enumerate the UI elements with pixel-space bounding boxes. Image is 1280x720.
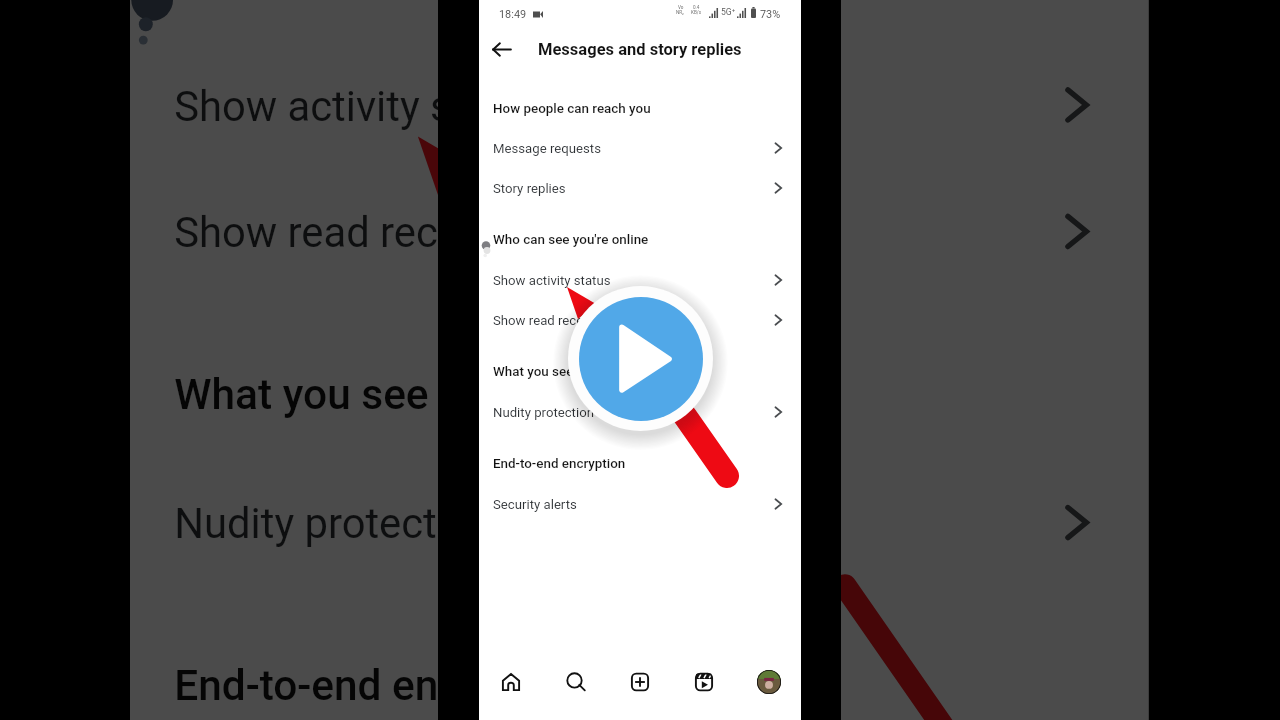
button[interactable]: Search (559, 666, 591, 698)
button[interactable]: Show read receipts (479, 300, 801, 340)
button[interactable]: Play (579, 297, 703, 421)
button[interactable]: Reels (688, 666, 720, 698)
staticText: Who can see you're online (493, 232, 649, 248)
staticText: Who can see you're online (174, 0, 668, 4)
staticText: End-to-end encryption (493, 456, 626, 472)
staticText: Show read receipts (174, 209, 529, 257)
staticText: What you see (493, 364, 574, 380)
staticText: Message requests (493, 141, 601, 156)
staticText: Vo (678, 5, 684, 10)
staticText: 0.4 (693, 5, 700, 10)
staticText: How people can reach you (493, 101, 651, 117)
button[interactable]: Nudity protection (130, 459, 1149, 586)
staticText: 18:49 (499, 8, 527, 21)
staticText: 73% (760, 8, 781, 21)
button[interactable]: Show read receipts (130, 168, 1149, 295)
button[interactable]: Back (484, 32, 518, 66)
button[interactable]: Story replies (479, 168, 801, 208)
button[interactable]: Message requests (479, 128, 801, 168)
button[interactable]: Home (495, 666, 527, 698)
staticText: Security alerts (493, 497, 577, 512)
button[interactable]: Show activity status (130, 42, 1149, 168)
button[interactable]: Security alerts (479, 484, 801, 524)
staticText: 5G⁺ (721, 7, 736, 17)
staticText: Nudity protection (493, 405, 594, 420)
button[interactable]: Profile (753, 666, 785, 698)
staticText: KB/s (691, 10, 702, 15)
button[interactable]: Create (624, 666, 656, 698)
staticText: NR₂ (676, 10, 684, 15)
button[interactable]: Show activity status (479, 260, 801, 300)
staticText: What you see (174, 371, 431, 421)
staticText: Show read receipts (493, 313, 605, 328)
staticText: Nudity protection (174, 500, 494, 548)
staticText: Show activity status (493, 273, 611, 288)
staticText: Show activity status (174, 83, 548, 130)
staticText: End-to-end encryption (174, 662, 595, 712)
staticText: Messages and story replies (538, 40, 742, 59)
staticText: Story replies (493, 181, 566, 196)
button[interactable]: Nudity protection (479, 392, 801, 432)
